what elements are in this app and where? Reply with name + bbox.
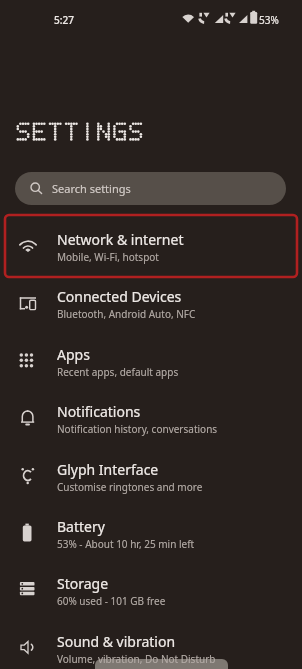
staticText: Volume, vibration, Do Not Disturb [57, 652, 216, 666]
staticText: Connected Devices [57, 287, 182, 306]
button[interactable]: Notifications [0, 389, 302, 447]
button[interactable]: Storage [0, 561, 302, 619]
staticText: Sound & vibration [57, 632, 176, 651]
staticText: Battery [57, 517, 105, 536]
button[interactable]: Sound & vibration [0, 619, 302, 669]
button[interactable]: Apps [0, 332, 302, 390]
staticText: 53% - About 10 hr, 25 min left [57, 537, 195, 551]
staticText: 53% [259, 13, 279, 27]
button[interactable]: Glyph Interface [0, 447, 302, 505]
staticText: Customise ringtones and more [57, 480, 203, 494]
staticText: Apps [57, 345, 90, 364]
staticText: 5:27 [54, 13, 74, 27]
staticText: Storage [57, 574, 109, 593]
button[interactable]: Connected Devices [0, 274, 302, 332]
staticText: Recent apps, default apps [57, 365, 179, 379]
staticText: Network & internet [57, 230, 184, 249]
staticText: Notification history, conversations [57, 422, 218, 436]
staticText: Notifications [57, 402, 141, 421]
staticText: Search settings [52, 181, 131, 196]
staticText: Bluetooth, Android Auto, NFC [57, 307, 196, 321]
button[interactable]: Search settings [15, 172, 286, 205]
staticText: Glyph Interface [57, 460, 159, 479]
staticText: 60% used - 101 GB free [57, 594, 166, 608]
button[interactable]: Network & internet [0, 217, 302, 275]
button[interactable]: Battery [0, 504, 302, 562]
staticText: Mobile, Wi-Fi, hotspot [57, 250, 159, 264]
